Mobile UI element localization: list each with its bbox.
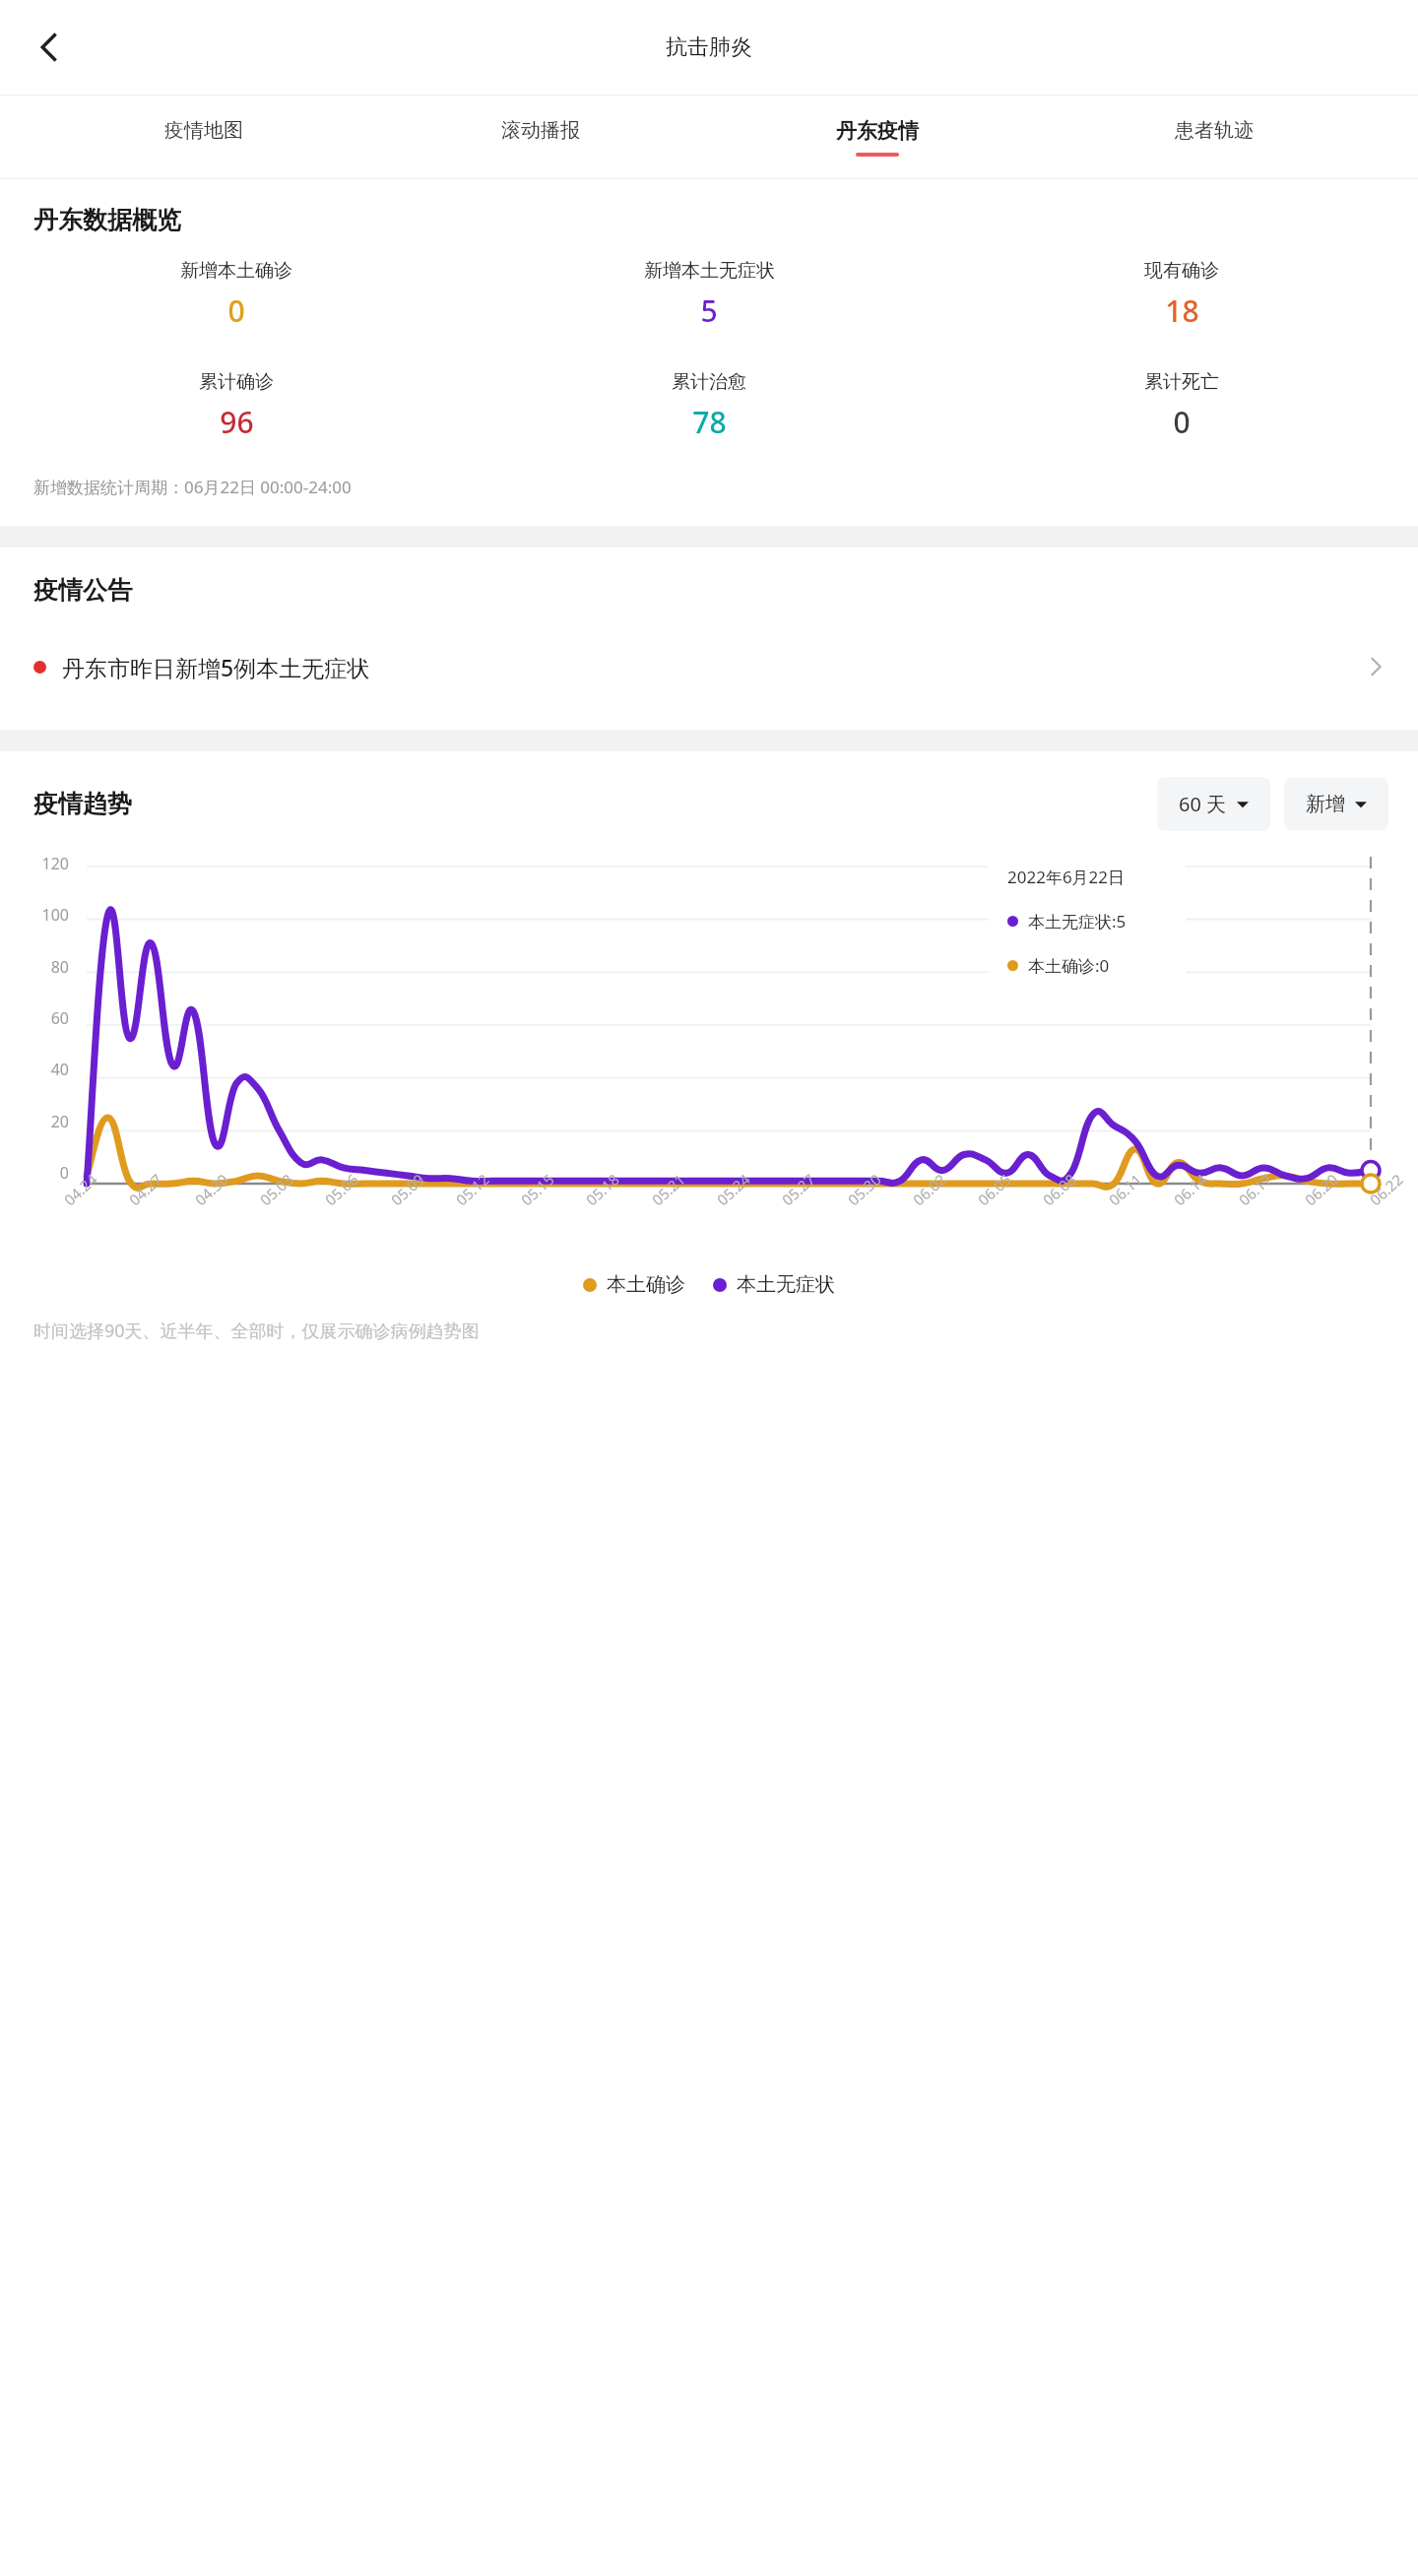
button[interactable]: 滚动播报 — [372, 96, 709, 178]
staticText: 05.15 — [516, 1169, 558, 1210]
staticText: 06.20 — [1300, 1169, 1342, 1210]
staticText: 滚动播报 — [501, 118, 580, 143]
staticText: 05.06 — [320, 1169, 362, 1210]
staticText: 0 — [1173, 402, 1191, 442]
staticText: 05.12 — [451, 1169, 493, 1210]
staticText: 本土无症状:5 — [1028, 910, 1127, 933]
staticText: 20 — [50, 1111, 69, 1132]
staticText: 06.14 — [1169, 1169, 1211, 1210]
staticText: 06.02 — [908, 1169, 950, 1210]
staticText: 新增本土无症状 — [644, 259, 775, 283]
staticText: 0 — [227, 290, 245, 331]
staticText: 40 — [50, 1059, 69, 1080]
staticText: 04.27 — [124, 1169, 166, 1210]
staticText: 本土无症状 — [737, 1272, 835, 1297]
staticText: 04.30 — [190, 1169, 232, 1210]
staticText: 累计治愈 — [672, 370, 746, 394]
staticText: 抗击肺炎 — [666, 33, 752, 61]
staticText: 06.11 — [1104, 1169, 1146, 1210]
button[interactable]: 疫情地图 — [35, 96, 372, 178]
staticText: 新增 — [1306, 792, 1345, 816]
staticText: 05.24 — [712, 1169, 754, 1210]
staticText: 100 — [41, 904, 69, 926]
staticText: 96 — [220, 402, 254, 442]
staticText: 06.22 — [1365, 1169, 1407, 1210]
staticText: 06.17 — [1234, 1169, 1276, 1210]
button[interactable]: 本土无症状 — [713, 1272, 835, 1297]
staticText: 04.24 — [59, 1169, 101, 1210]
staticText: 5 — [700, 290, 718, 331]
staticText: 05.18 — [581, 1169, 623, 1210]
staticText: 丹东数据概览 — [33, 205, 181, 235]
staticText: 60 — [50, 1007, 69, 1029]
button[interactable]: 患者轨迹 — [1046, 96, 1383, 178]
staticText: 累计确诊 — [199, 370, 274, 394]
staticText: 60 天 — [1179, 791, 1227, 817]
button[interactable]: Back — [18, 16, 81, 79]
staticText: 120 — [41, 853, 69, 874]
staticText: 05.30 — [843, 1169, 885, 1210]
staticText: 2022年6月22日 — [1007, 866, 1126, 888]
staticText: 80 — [50, 956, 69, 978]
staticText: 本土确诊:0 — [1028, 954, 1110, 977]
button[interactable]: 本土确诊 — [583, 1272, 685, 1297]
staticText: 新增本土确诊 — [180, 259, 292, 283]
staticText: 疫情地图 — [164, 118, 243, 143]
staticText: 丹东疫情 — [836, 118, 919, 144]
staticText: 78 — [692, 402, 727, 442]
staticText: 18 — [1165, 290, 1199, 331]
staticText: 时间选择90天、近半年、全部时，仅展示确诊病例趋势图 — [33, 1319, 480, 1343]
button[interactable]: 60 天 — [1157, 777, 1270, 831]
staticText: 05.21 — [647, 1169, 689, 1210]
staticText: 05.27 — [777, 1169, 819, 1210]
button[interactable]: 丹东市昨日新增5例本土无症状 — [0, 625, 1418, 708]
staticText: 06.05 — [973, 1169, 1015, 1210]
staticText: 新增数据统计周期：06月22日 00:00-24:00 — [33, 476, 352, 498]
staticText: 现有确诊 — [1144, 259, 1219, 283]
staticText: 0 — [59, 1162, 69, 1184]
staticText: 患者轨迹 — [1175, 118, 1254, 143]
button[interactable]: 丹东疫情 — [709, 96, 1046, 178]
staticText: 疫情公告 — [33, 575, 132, 606]
staticText: 06.08 — [1038, 1169, 1080, 1210]
staticText: 05.09 — [386, 1169, 428, 1210]
staticText: 累计死亡 — [1144, 370, 1219, 394]
staticText: 疫情趋势 — [33, 789, 132, 819]
staticText: 05.03 — [255, 1169, 297, 1210]
staticText: 丹东市昨日新增5例本土无症状 — [62, 652, 1363, 682]
button[interactable]: 新增 — [1284, 778, 1388, 830]
staticText: 本土确诊 — [607, 1272, 685, 1297]
